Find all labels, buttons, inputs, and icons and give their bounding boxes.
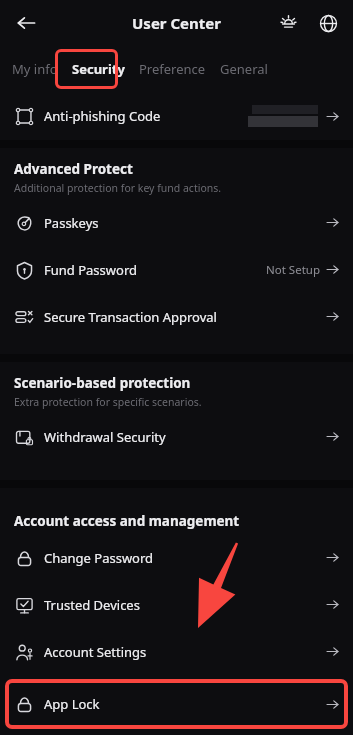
- button[interactable]: Change Password: [0, 534, 353, 581]
- staticText: Account Settings: [44, 643, 147, 661]
- button[interactable]: Account Settings: [0, 628, 353, 675]
- staticText: Preference: [139, 60, 206, 78]
- button[interactable]: Secure Transaction Approval: [0, 293, 353, 340]
- staticText: Additional protection for key fund actio…: [14, 181, 222, 195]
- staticText: Change Password: [44, 549, 154, 567]
- staticText: Passkeys: [44, 214, 99, 232]
- staticText: Secure Transaction Approval: [44, 308, 217, 326]
- button[interactable]: App Lock: [5, 679, 348, 729]
- staticText: Security: [72, 60, 125, 78]
- staticText: Advanced Protect: [14, 160, 133, 178]
- button[interactable]: Security: [72, 54, 125, 84]
- staticText: Extra protection for specific scenarios.: [14, 395, 202, 409]
- button[interactable]: Language: [311, 6, 345, 40]
- staticText: General: [220, 60, 268, 78]
- staticText: Not Setup: [266, 262, 320, 278]
- staticText: App Lock: [44, 695, 100, 713]
- staticText: Withdrawal Security: [44, 428, 166, 446]
- staticText: Scenario-based protection: [14, 374, 191, 392]
- button[interactable]: Back: [6, 3, 46, 43]
- staticText: User Center: [132, 13, 221, 33]
- button[interactable]: Anti-phishing Code: [0, 92, 353, 140]
- staticText: Fund Password: [44, 261, 137, 279]
- staticText: Account access and management: [14, 512, 240, 530]
- button[interactable]: Passkeys: [0, 199, 353, 246]
- button[interactable]: Withdrawal Security: [0, 413, 353, 460]
- staticText: Trusted Devices: [44, 596, 140, 614]
- staticText: My info: [12, 60, 58, 78]
- staticText: Anti-phishing Code: [44, 107, 161, 125]
- button[interactable]: Theme: [271, 6, 305, 40]
- button[interactable]: Fund Password: [0, 246, 353, 293]
- button[interactable]: My info: [12, 54, 58, 84]
- button[interactable]: Trusted Devices: [0, 581, 353, 628]
- button[interactable]: General: [220, 54, 268, 84]
- button[interactable]: Preference: [139, 54, 206, 84]
